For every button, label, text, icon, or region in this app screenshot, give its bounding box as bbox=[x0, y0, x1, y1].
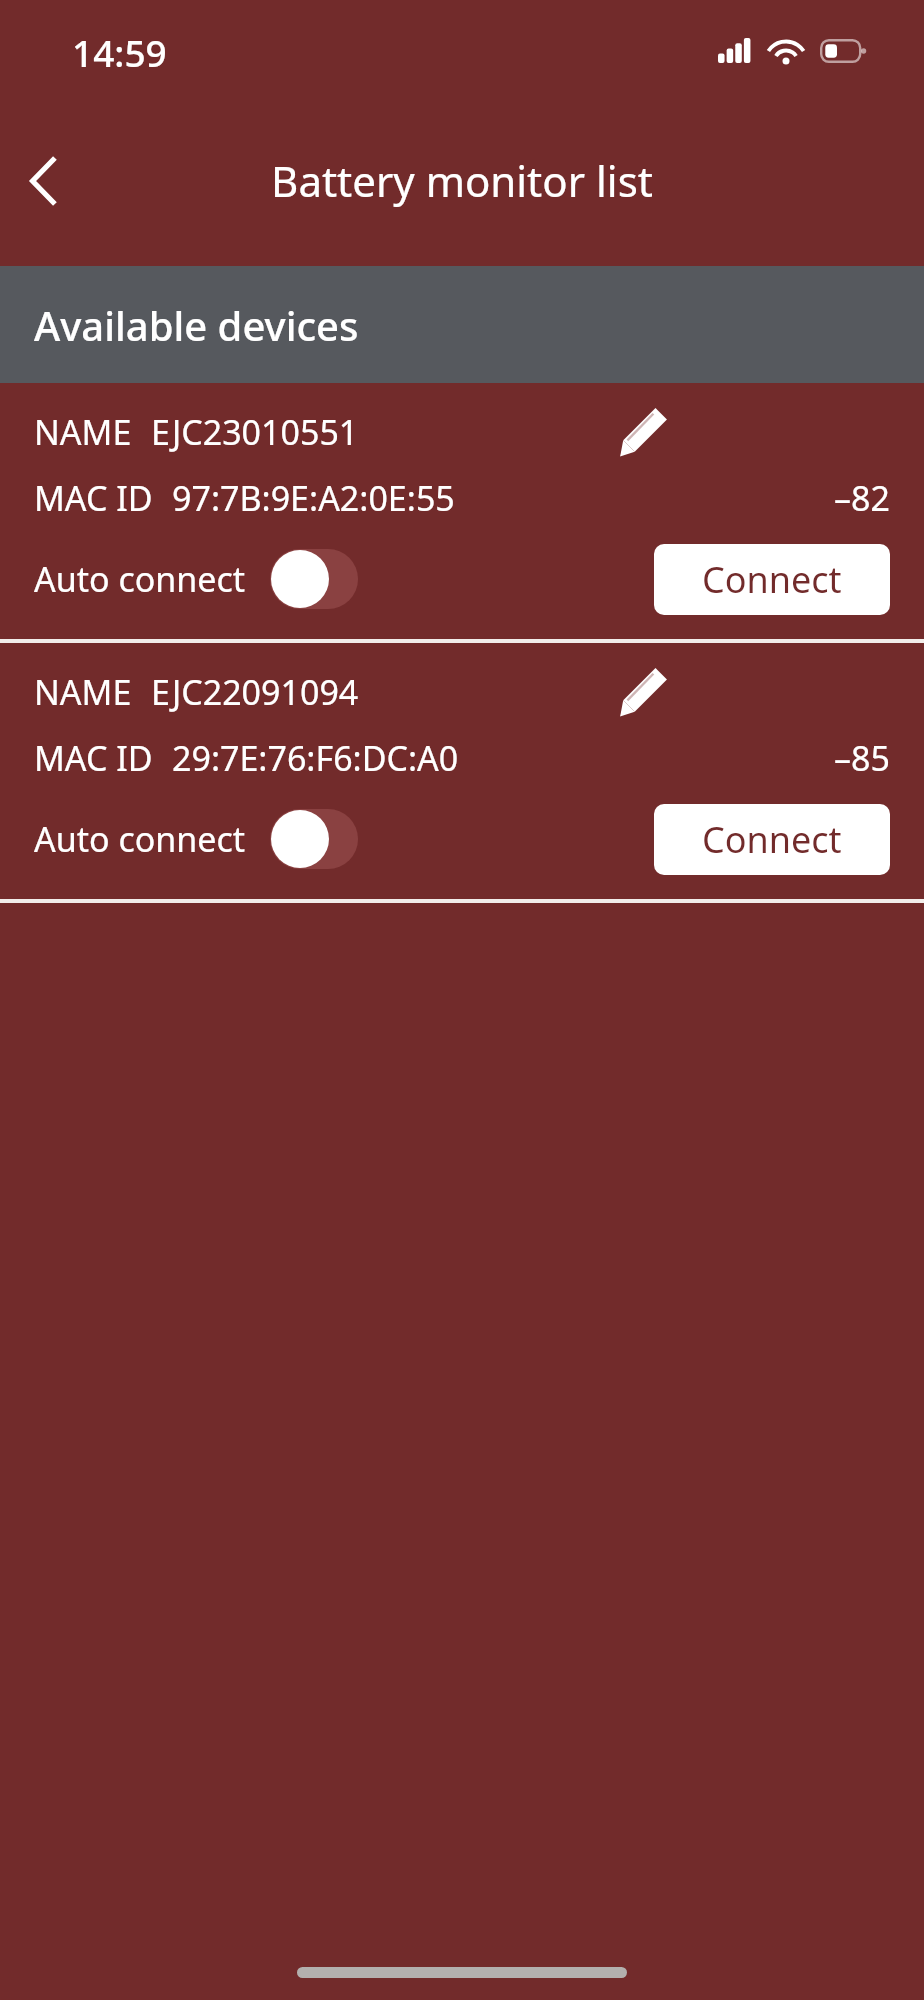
staticText: EJC22091094 bbox=[151, 669, 359, 715]
button[interactable]: Auto connect toggle bbox=[270, 549, 358, 609]
button[interactable]: Back bbox=[6, 143, 82, 219]
button[interactable]: Edit name bbox=[612, 401, 674, 463]
staticText: –82 bbox=[834, 475, 890, 521]
staticText: 14:59 bbox=[72, 27, 167, 77]
staticText: –85 bbox=[834, 735, 890, 781]
staticText: 29:7E:76:F6:DC:A0 bbox=[172, 735, 459, 781]
staticText: Available devices bbox=[34, 298, 359, 352]
staticText: MAC ID bbox=[34, 475, 153, 521]
button[interactable]: Connect bbox=[654, 544, 890, 615]
button[interactable]: NAME bbox=[0, 383, 924, 639]
staticText: Auto connect bbox=[34, 816, 246, 862]
button[interactable]: Edit name bbox=[612, 661, 674, 723]
staticText: Auto connect bbox=[34, 556, 246, 602]
button[interactable]: Auto connect toggle bbox=[270, 809, 358, 869]
staticText: EJC23010551 bbox=[151, 409, 359, 455]
staticText: NAME bbox=[34, 669, 132, 715]
staticText: Connect bbox=[702, 555, 842, 604]
staticText: NAME bbox=[34, 409, 132, 455]
staticText: Connect bbox=[702, 815, 842, 864]
staticText: MAC ID bbox=[34, 735, 153, 781]
staticText: Battery monitor list bbox=[271, 152, 653, 209]
button[interactable]: NAME bbox=[0, 643, 924, 899]
staticText: 97:7B:9E:A2:0E:55 bbox=[172, 475, 455, 521]
button[interactable]: Connect bbox=[654, 804, 890, 875]
